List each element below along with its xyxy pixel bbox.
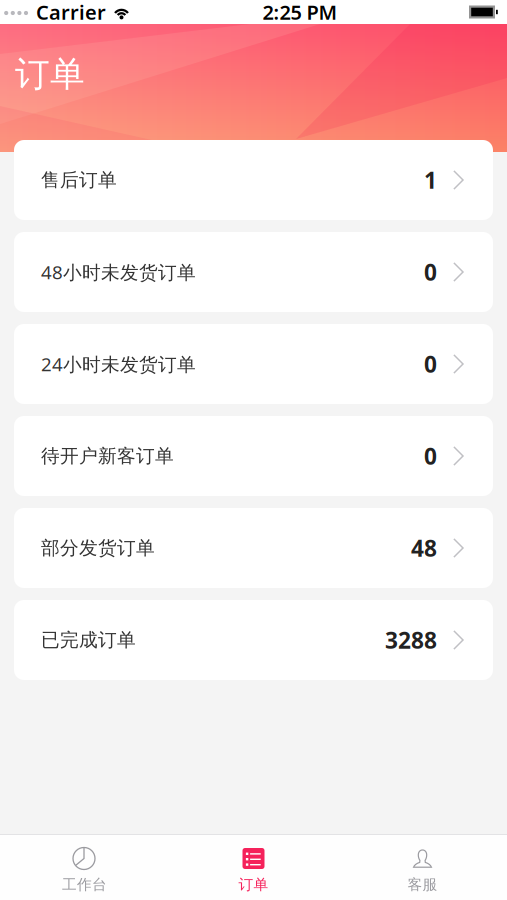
button[interactable]: 已完成订单 <box>14 600 493 680</box>
staticText: 待开户新客订单 <box>41 444 174 467</box>
staticText: 售后订单 <box>41 168 117 191</box>
staticText: 0 <box>424 349 437 379</box>
button[interactable]: 订单 <box>169 835 338 900</box>
staticText: 订单 <box>15 53 85 96</box>
staticText: 48 <box>411 533 437 563</box>
button[interactable]: 部分发货订单 <box>14 508 493 588</box>
staticText: 部分发货订单 <box>41 536 155 559</box>
staticText: 工作台 <box>62 875 107 893</box>
staticText: 0 <box>424 441 437 471</box>
staticText: 0 <box>424 257 437 287</box>
staticText: 订单 <box>238 875 268 893</box>
button[interactable]: 48小时未发货订单 <box>14 232 493 312</box>
staticText: 2:25 PM <box>262 0 337 25</box>
button[interactable]: 待开户新客订单 <box>14 416 493 496</box>
staticText: 24小时未发货订单 <box>41 352 196 376</box>
staticText: 3288 <box>385 625 437 655</box>
button[interactable]: 客服 <box>338 835 507 900</box>
button[interactable]: 工作台 <box>0 835 169 900</box>
button[interactable]: 售后订单 <box>14 140 493 220</box>
staticText: 48小时未发货订单 <box>41 260 196 284</box>
staticText: 客服 <box>407 875 437 893</box>
staticText: 已完成订单 <box>41 628 136 651</box>
staticText: Carrier <box>36 0 106 25</box>
button[interactable]: 24小时未发货订单 <box>14 324 493 404</box>
staticText: 1 <box>424 165 437 195</box>
